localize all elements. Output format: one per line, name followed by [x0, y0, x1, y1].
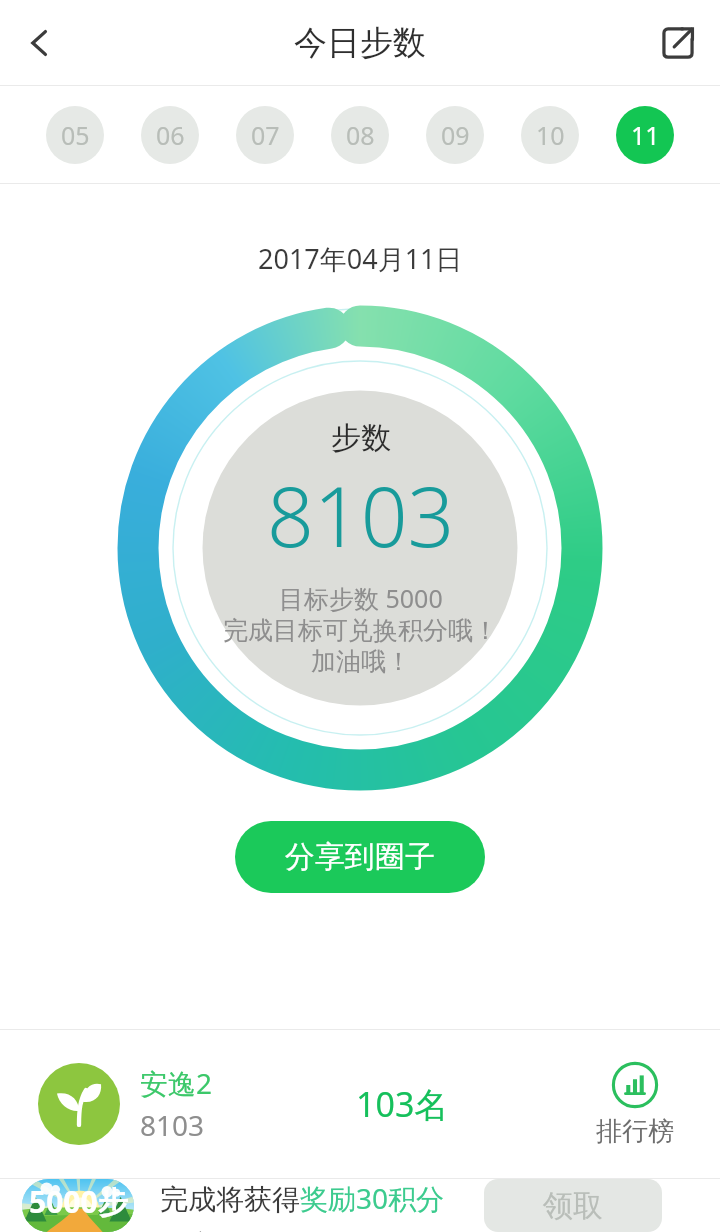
- button[interactable]: 领取: [484, 1179, 662, 1232]
- staticText: 分享到圈子: [285, 838, 435, 876]
- staticText: 07: [251, 118, 280, 152]
- button[interactable]: 排行榜: [596, 1061, 674, 1148]
- staticText: 5000步: [29, 1181, 128, 1222]
- staticText: 完成目标可兑换积分哦！: [223, 615, 498, 646]
- staticText: 领取: [543, 1187, 603, 1225]
- staticText: 8103: [140, 1106, 205, 1144]
- staticText: 09: [441, 118, 470, 152]
- staticText: 排行榜: [596, 1115, 674, 1148]
- staticText: 08: [346, 118, 375, 152]
- button[interactable]: Back: [8, 11, 72, 75]
- button[interactable]: 07: [236, 106, 294, 164]
- staticText: 8103: [267, 459, 455, 571]
- staticText: 103名: [356, 1081, 449, 1127]
- button[interactable]: 05: [46, 106, 104, 164]
- button[interactable]: 06: [141, 106, 199, 164]
- staticText: 10: [536, 118, 565, 152]
- button[interactable]: Share: [646, 11, 710, 75]
- staticText: 完成将获得奖励30积分: [160, 1179, 445, 1217]
- staticText: 加油哦！: [311, 646, 411, 677]
- staticText: 06: [156, 118, 185, 152]
- button[interactable]: 10: [521, 106, 579, 164]
- button[interactable]: 分享到圈子: [235, 821, 485, 893]
- staticText: 05: [61, 118, 90, 152]
- staticText: 目标步数 5000: [279, 581, 443, 615]
- staticText: 步数: [331, 419, 391, 457]
- button[interactable]: 11: [616, 106, 674, 164]
- staticText: 11: [631, 118, 660, 152]
- button[interactable]: 09: [426, 106, 484, 164]
- staticText: 2017年04月11日: [258, 240, 463, 277]
- staticText: 安逸2: [140, 1064, 213, 1102]
- staticText: 今日步数: [294, 22, 426, 64]
- button[interactable]: 08: [331, 106, 389, 164]
- button[interactable]: 安逸2: [38, 1063, 213, 1145]
